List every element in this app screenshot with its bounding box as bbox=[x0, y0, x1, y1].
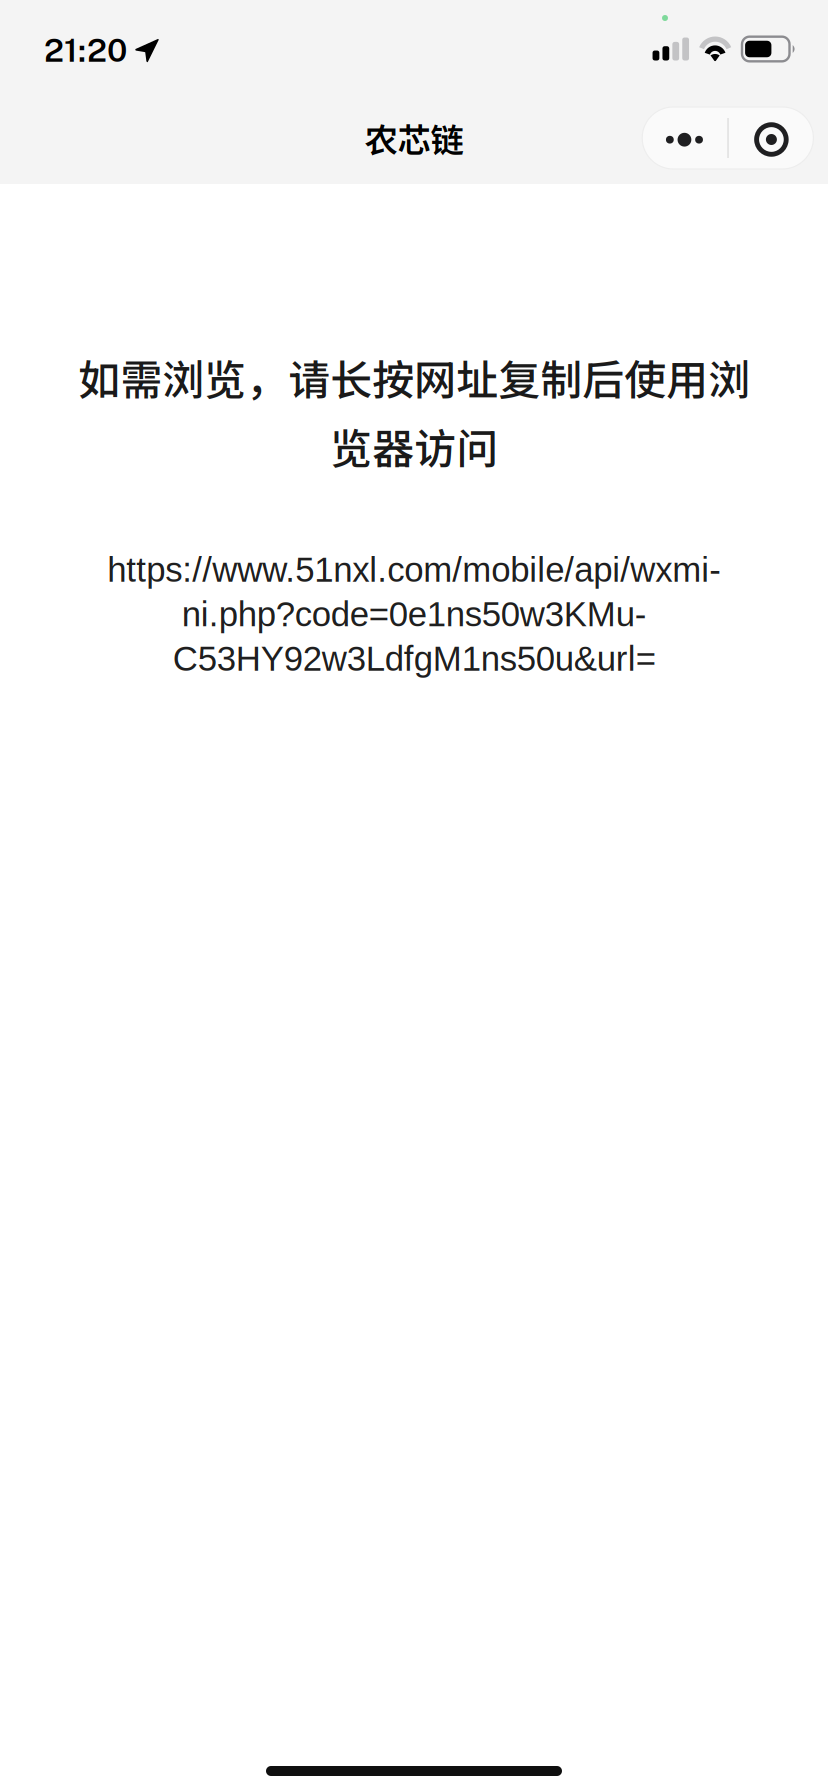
staticText: 如需浏览，请长按网址复制后使用浏 览器访问 bbox=[78, 347, 750, 476]
staticText: https://www.51nxl.com/mobile/api/wxmi- n… bbox=[107, 550, 721, 678]
button[interactable]: Close mini program bbox=[729, 107, 814, 169]
staticText: 21:20 bbox=[44, 31, 127, 69]
staticText: 农芯链 bbox=[364, 114, 463, 162]
button[interactable]: More options bbox=[642, 107, 727, 169]
